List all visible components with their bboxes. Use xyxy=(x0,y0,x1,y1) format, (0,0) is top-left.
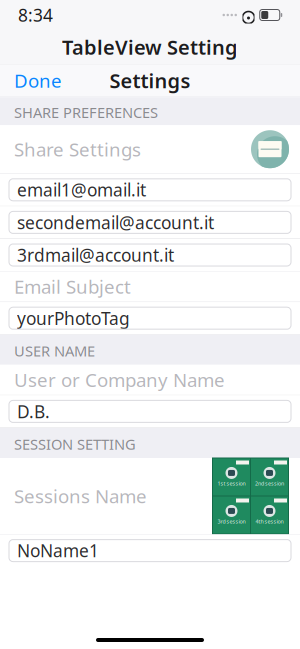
staticText: SESSION SETTING xyxy=(14,434,136,454)
staticText: 4th session xyxy=(255,518,283,525)
staticText: Done xyxy=(14,68,62,93)
staticText: NoName1 xyxy=(17,539,99,562)
staticText: secondemail@account.it xyxy=(17,211,214,234)
staticText: 1st session xyxy=(217,480,245,487)
staticText: Share Settings xyxy=(14,137,141,162)
staticText: 2nd session xyxy=(255,480,284,487)
staticText: Email Subject xyxy=(14,274,131,299)
staticText: 3rd session xyxy=(217,518,245,525)
button[interactable]: Share Settings xyxy=(0,125,300,173)
staticText: USER NAME xyxy=(14,341,95,361)
staticText: 8:34 xyxy=(18,3,53,26)
staticText: 3rdmail@account.it xyxy=(17,243,174,266)
staticText: yourPhotoTag xyxy=(17,307,130,330)
staticText: SHARE PREFERENCES xyxy=(14,102,158,122)
staticText: Sessions Name xyxy=(14,484,147,508)
staticText: User or Company Name xyxy=(14,367,225,392)
button[interactable]: Done xyxy=(0,60,76,101)
staticText: email1@omail.it xyxy=(17,178,146,201)
staticText: TableView Setting xyxy=(62,34,238,60)
staticText: Settings xyxy=(109,67,190,94)
staticText: D.B. xyxy=(17,400,50,423)
button[interactable]: Sessions Name xyxy=(0,458,300,534)
